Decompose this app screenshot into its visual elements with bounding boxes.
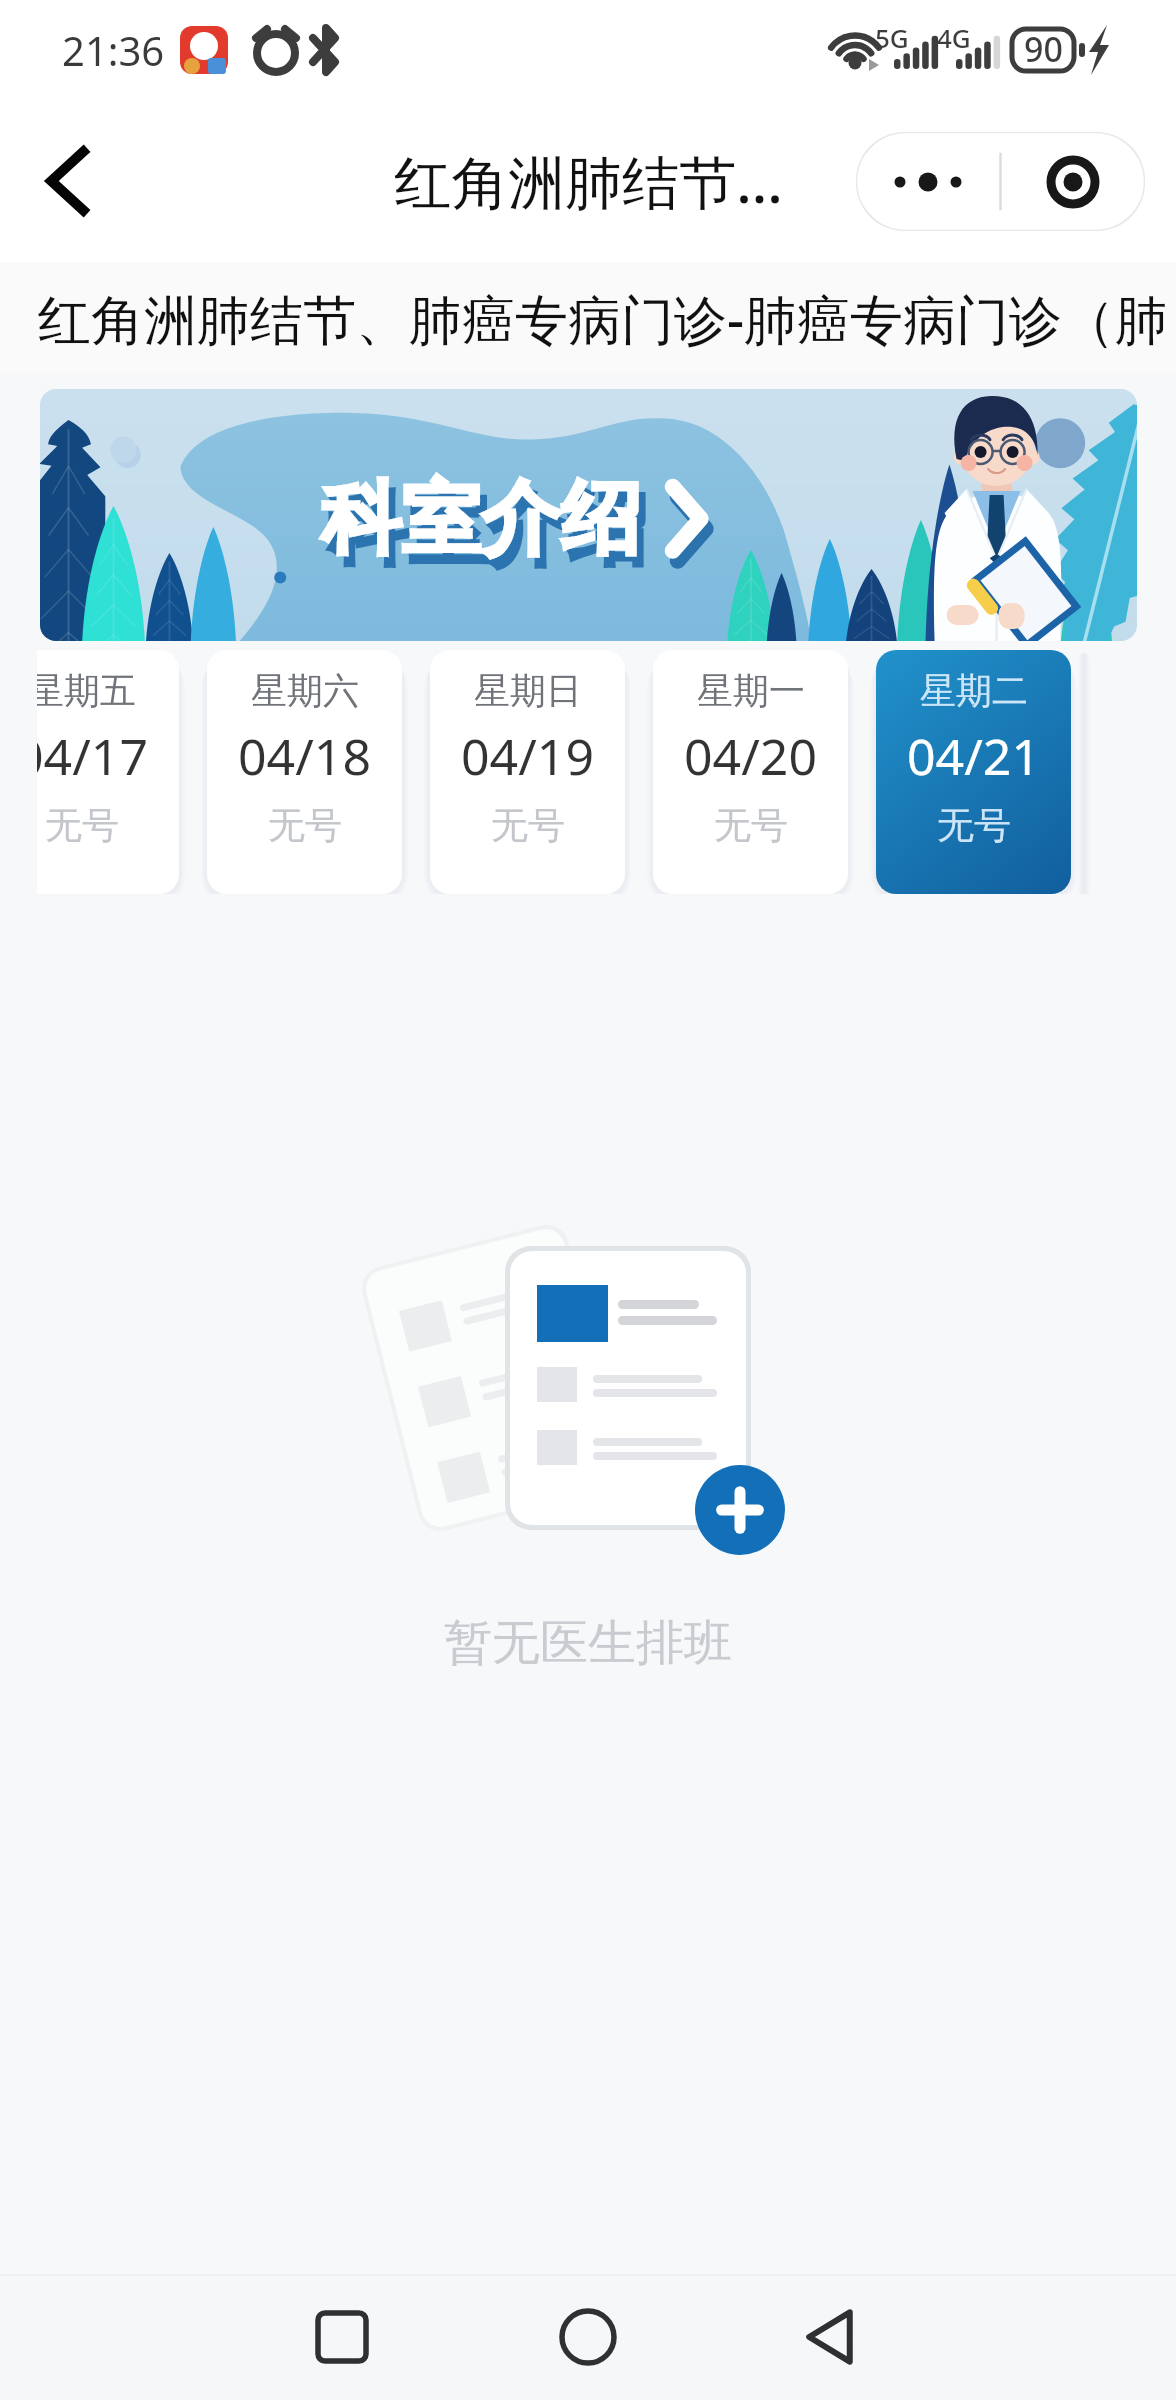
button[interactable]: Back [0,100,135,262]
staticText: 04/21 [907,722,1040,790]
staticText: 04/19 [461,722,594,790]
staticText: 星期五 [37,668,136,713]
staticText: 无号 [937,802,1011,849]
staticText: 04/20 [684,722,817,790]
button[interactable]: 科室介绍 [40,389,1137,641]
staticText: 暂无医生排班 [444,1613,732,1673]
staticText: 5G [875,20,909,55]
button[interactable]: 星期六 [207,650,402,894]
staticText: 无号 [491,802,565,849]
staticText: 星期二 [920,668,1028,713]
button[interactable]: 星期一 [653,650,848,894]
staticText: 04/17 [37,722,148,790]
staticText: 科室介绍 [328,480,648,581]
button[interactable]: Back [755,2274,905,2400]
staticText: 无号 [45,802,119,849]
button[interactable]: 星期五 [37,650,179,894]
staticText: 星期六 [251,668,359,713]
staticText: 21:36 [62,23,165,77]
button[interactable]: Close [1000,132,1145,231]
button[interactable]: More options [856,132,1000,231]
button[interactable]: Home [513,2274,663,2400]
staticText: 90 [1024,26,1063,72]
button[interactable]: 星期日 [430,650,625,894]
staticText: 4G [937,20,971,55]
staticText: 无号 [714,802,788,849]
staticText: 星期日 [474,668,582,713]
staticText: 04/18 [238,722,371,790]
staticText: 红角洲肺结节... [394,142,783,220]
staticText: 红角洲肺结节、肺癌专病门诊-肺癌专病门诊（肺结 [38,282,1176,354]
button[interactable]: Recents [267,2274,417,2400]
staticText: 星期一 [697,668,805,713]
button[interactable]: 星期二 [876,650,1071,894]
staticText: 科室介绍 [321,469,641,570]
staticText: 无号 [268,802,342,849]
